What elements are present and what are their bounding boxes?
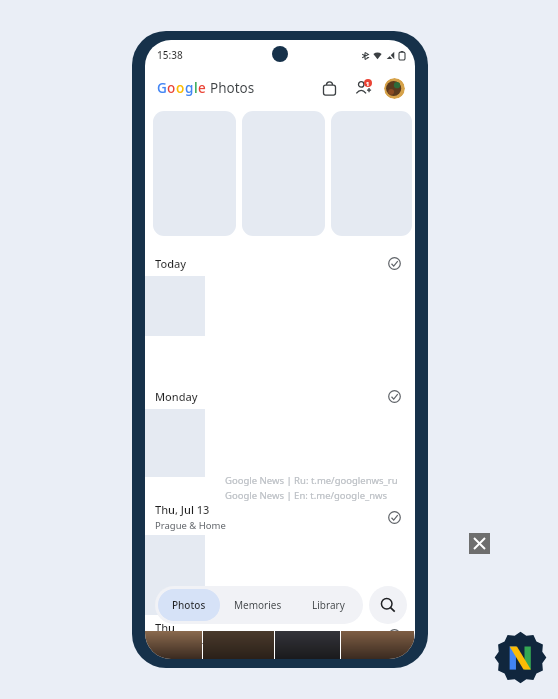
button[interactable]: Close — [469, 533, 490, 554]
button[interactable]: Select all — [385, 508, 403, 526]
button[interactable]: Account — [384, 78, 405, 99]
staticText: l — [194, 79, 198, 97]
button[interactable]: Select all — [385, 387, 403, 405]
button[interactable]: Thu — [145, 617, 415, 653]
staticText: Google News | En: t.me/google_nws — [225, 489, 388, 502]
staticText: Photos — [172, 598, 206, 612]
staticText: Memories — [234, 598, 282, 612]
staticText: Today — [155, 256, 187, 271]
staticText: Google News | Ru: t.me/googlenws_ru — [225, 474, 398, 487]
button[interactable]: Sharing — [351, 76, 375, 100]
button[interactable]: Library — [296, 589, 360, 621]
staticText: Prague & Home — [155, 519, 226, 532]
staticText: Photos — [210, 79, 255, 97]
staticText: Thu, Jul 13 — [155, 502, 210, 517]
button[interactable]: Select all — [385, 254, 403, 272]
staticText: o — [167, 79, 176, 97]
staticText: e — [198, 79, 206, 97]
button[interactable]: Monday — [145, 383, 415, 409]
button[interactable]: Today — [145, 250, 415, 276]
staticText: 15:38 — [157, 48, 183, 62]
staticText: 1 — [366, 80, 370, 87]
button[interactable]: Logo badge — [493, 630, 548, 685]
button[interactable]: Store — [317, 76, 341, 100]
staticText: o — [176, 79, 185, 97]
staticText: Thu — [155, 620, 175, 635]
staticText: G — [157, 79, 167, 97]
button[interactable]: Photo — [145, 535, 205, 615]
staticText: Monday — [155, 389, 198, 404]
button[interactable]: Select all — [385, 626, 403, 644]
button[interactable]: Memories — [226, 589, 290, 621]
staticText: Library — [312, 598, 345, 612]
staticText: Prague & Home — [155, 637, 226, 650]
staticText: g — [185, 79, 194, 97]
button[interactable]: Photos — [158, 589, 220, 621]
button[interactable]: Search — [369, 586, 407, 624]
button[interactable]: Thu, Jul 13 — [145, 499, 415, 535]
